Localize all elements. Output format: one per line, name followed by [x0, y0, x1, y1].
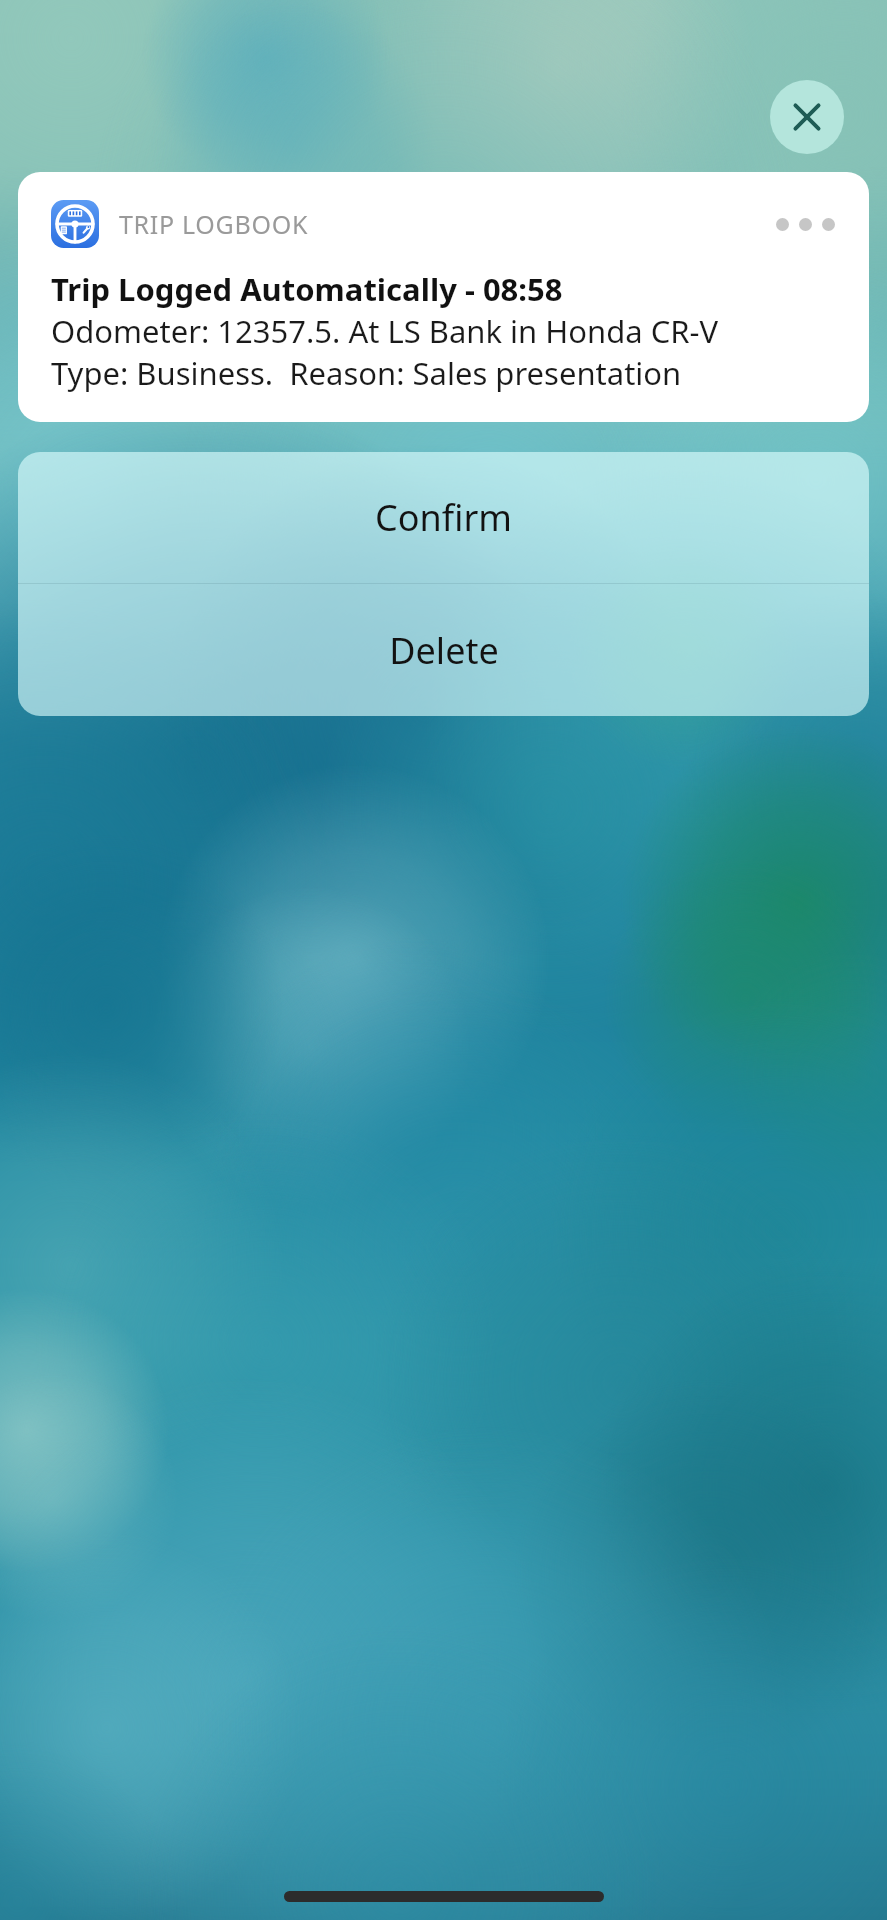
staticText: Delete	[389, 626, 499, 675]
button[interactable]: TRIP LOGBOOK	[18, 172, 869, 422]
button[interactable]: Delete	[18, 584, 869, 716]
staticText: Odometer: 12357.5. At LS Bank in Honda C…	[51, 310, 719, 352]
staticText: Trip Logged Automatically - 08:58	[51, 268, 563, 310]
staticText: Type: Business. Reason: Sales presentati…	[51, 352, 682, 394]
button[interactable]: Confirm	[18, 452, 869, 583]
button[interactable]: More options	[768, 210, 843, 239]
staticText: Confirm	[375, 493, 512, 542]
button[interactable]: Close notifications	[770, 80, 844, 154]
staticText: TRIP LOGBOOK	[119, 207, 309, 241]
